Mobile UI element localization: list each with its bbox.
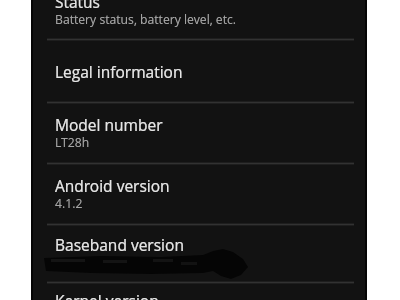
staticText: 4.1.2 xyxy=(55,195,83,212)
staticText: Model number xyxy=(55,114,163,135)
button[interactable]: Baseband version xyxy=(31,225,367,282)
staticText: Legal information xyxy=(55,61,183,82)
button[interactable]: Android version xyxy=(31,164,367,224)
other: Baseband version redacted xyxy=(31,225,367,282)
button[interactable]: Kernel version xyxy=(31,283,367,300)
button[interactable]: Legal information xyxy=(31,40,367,103)
staticText: Baseband version xyxy=(55,234,184,255)
staticText: Battery status, battery level, etc. xyxy=(55,11,237,28)
button[interactable]: Status xyxy=(31,0,367,39)
staticText: Status xyxy=(55,0,100,12)
staticText: LT28h xyxy=(55,134,90,151)
staticText: Kernel version xyxy=(55,290,159,300)
button[interactable]: Model number xyxy=(31,103,367,163)
staticText: Android version xyxy=(55,175,170,196)
